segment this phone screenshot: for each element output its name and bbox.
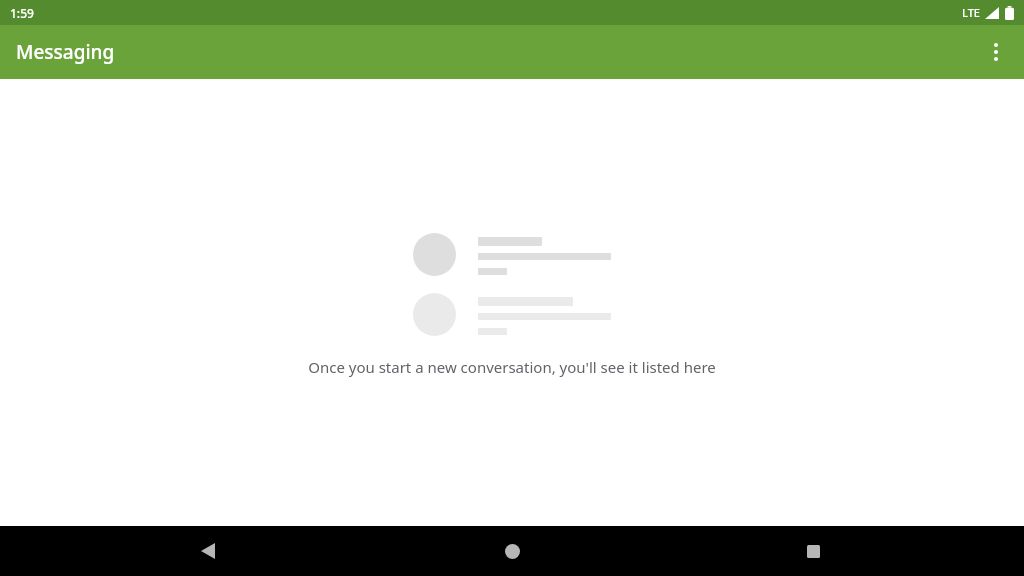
button[interactable]: Home (482, 526, 542, 576)
staticText: LTE (962, 5, 980, 20)
staticText: 1:59 (10, 5, 34, 21)
button[interactable]: More options (974, 30, 1018, 74)
staticText: Messaging (16, 39, 115, 65)
button[interactable]: Back (178, 526, 238, 576)
staticText: Once you start a new conversation, you'l… (0, 357, 1024, 377)
button[interactable]: Recent apps (783, 526, 843, 576)
